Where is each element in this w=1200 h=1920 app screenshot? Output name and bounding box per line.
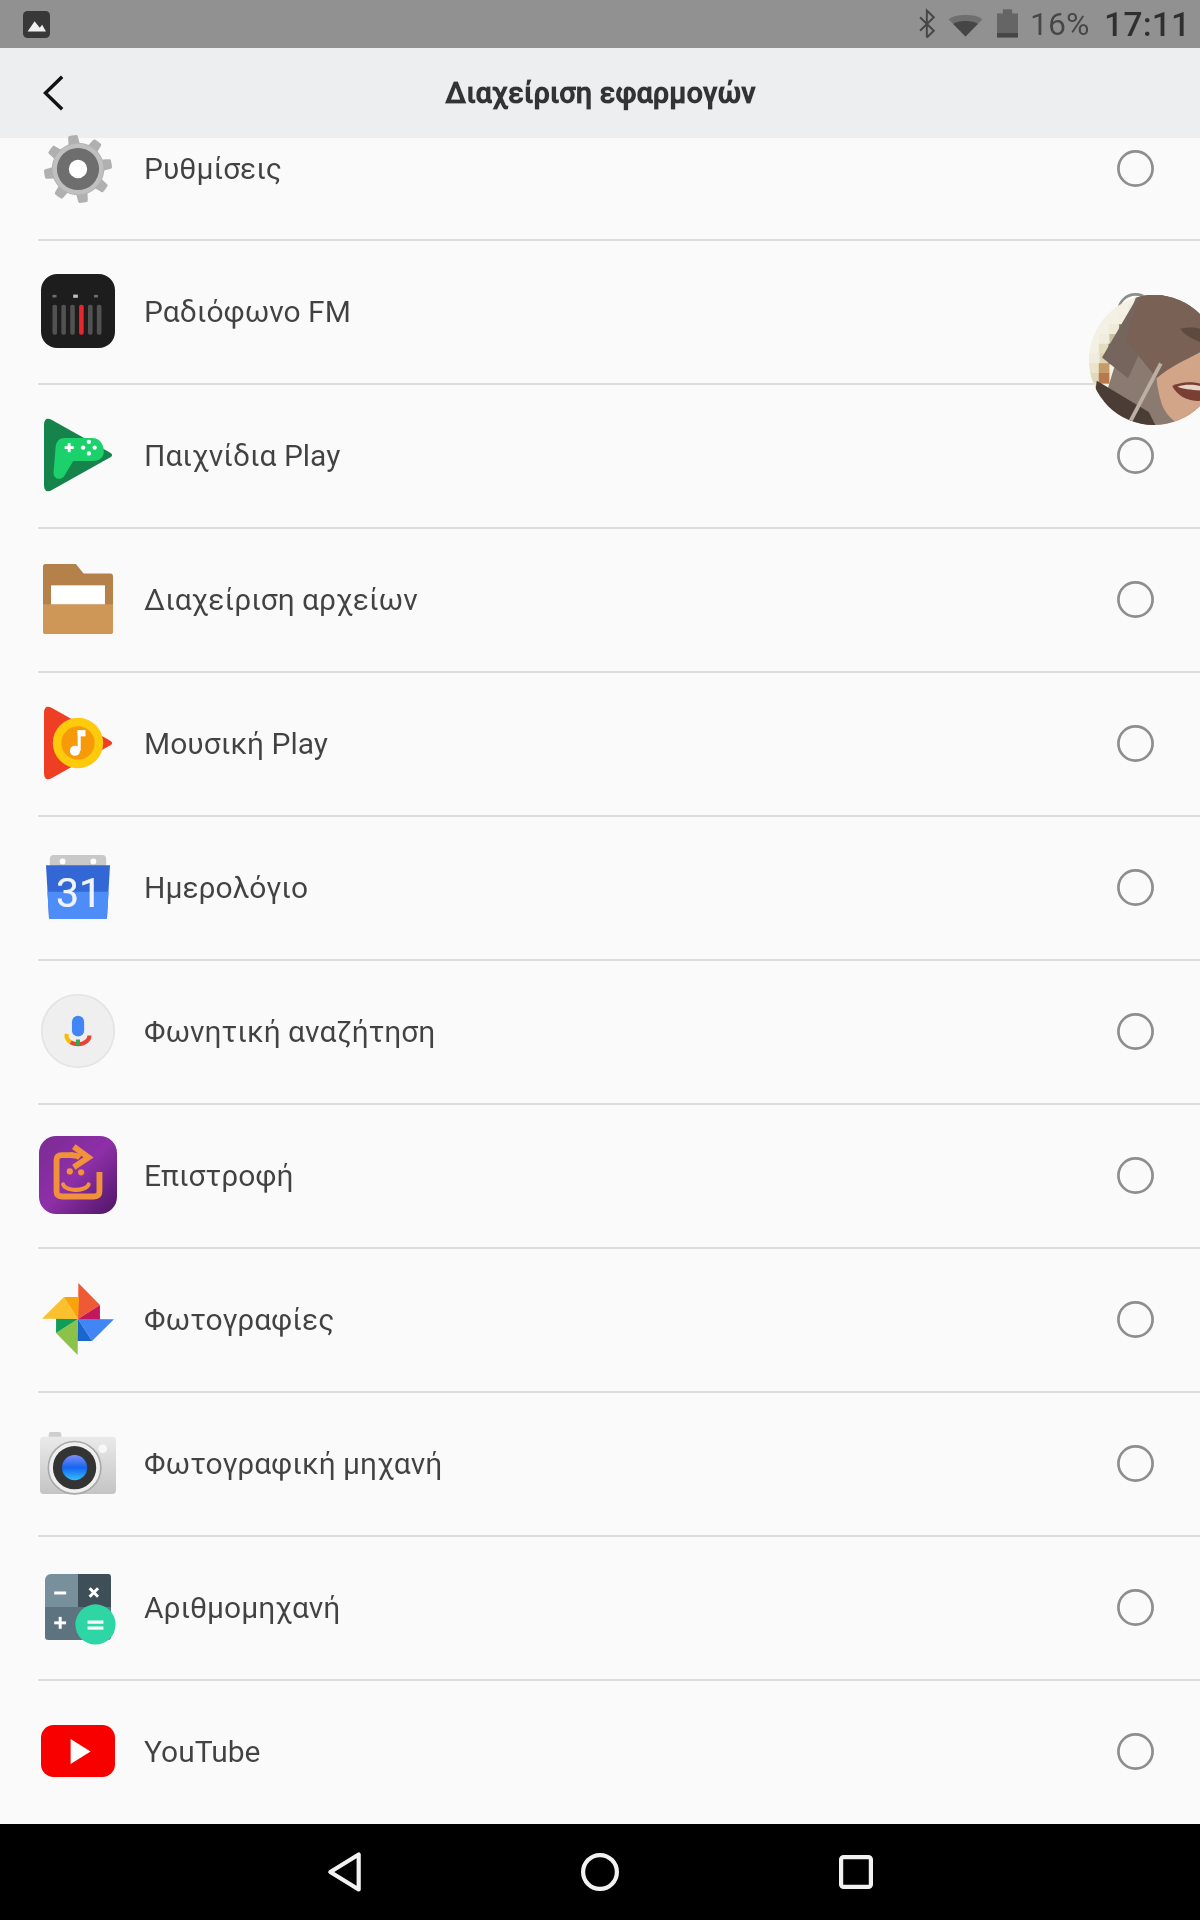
staticText: Αριθμομηχανή [144, 1590, 341, 1625]
button[interactable]: 31 [0, 815, 1200, 959]
staticText: Παιχνίδια Play [144, 438, 341, 473]
button[interactable]: Φωτογραφική μηχανή [0, 1391, 1200, 1535]
button[interactable]: Back [284, 1824, 404, 1920]
button[interactable]: Select Ραδιόφωνο FM [1117, 293, 1154, 330]
staticText: Διαχείριση εφαρμογών [445, 76, 756, 110]
button[interactable]: YouTube [0, 1679, 1200, 1823]
button[interactable]: Select Παιχνίδια Play [1117, 437, 1154, 474]
staticText: Φωτογραφική μηχανή [144, 1446, 443, 1481]
staticText: Ημερολόγιο [144, 870, 309, 905]
staticText: 16% [1030, 5, 1090, 43]
button[interactable]: Φωνητική αναζήτηση [0, 959, 1200, 1103]
button[interactable]: Select Μουσική Play [1117, 725, 1154, 762]
staticText: 17:11 [1104, 4, 1191, 44]
staticText: Φωνητική αναζήτηση [144, 1014, 436, 1049]
button[interactable]: Back [0, 48, 106, 138]
staticText: Ραδιόφωνο FM [144, 294, 351, 329]
staticText: Φωτογραφίες [144, 1302, 335, 1337]
staticText: Μουσική Play [144, 726, 329, 761]
button[interactable]: Φωτογραφίες [0, 1247, 1200, 1391]
button[interactable]: Select Διαχείριση αρχείων [1117, 581, 1154, 618]
button[interactable]: Select Φωτογραφίες [1117, 1301, 1154, 1338]
button[interactable]: Επιστροφή [0, 1103, 1200, 1247]
button[interactable]: Μουσική Play [0, 671, 1200, 815]
button[interactable]: Chat head [1089, 295, 1200, 425]
staticText: Διαχείριση αρχείων [144, 582, 418, 617]
button[interactable]: Select YouTube [1117, 1733, 1154, 1770]
button[interactable]: Select Φωτογραφική μηχανή [1117, 1445, 1154, 1482]
button[interactable]: Select Επιστροφή [1117, 1157, 1154, 1194]
staticText: Ρυθμίσεις [144, 151, 282, 186]
button[interactable]: Select Φωνητική αναζήτηση [1117, 1013, 1154, 1050]
button[interactable]: Διαχείριση αρχείων [0, 527, 1200, 671]
button[interactable]: Select Ρυθμίσεις [1117, 150, 1154, 187]
button[interactable]: Select Ημερολόγιο [1117, 869, 1154, 906]
staticText: YouTube [144, 1734, 261, 1769]
button[interactable]: Αριθμομηχανή [0, 1535, 1200, 1679]
button[interactable]: Select Αριθμομηχανή [1117, 1589, 1154, 1626]
button[interactable]: Ραδιόφωνο FM [0, 239, 1200, 383]
staticText: Επιστροφή [144, 1158, 294, 1193]
staticText: 31 [56, 869, 103, 917]
button[interactable]: Home [540, 1824, 660, 1920]
button[interactable]: Recent apps [796, 1824, 916, 1920]
button[interactable]: Παιχνίδια Play [0, 383, 1200, 527]
button[interactable]: Ρυθμίσεις [0, 138, 1200, 239]
